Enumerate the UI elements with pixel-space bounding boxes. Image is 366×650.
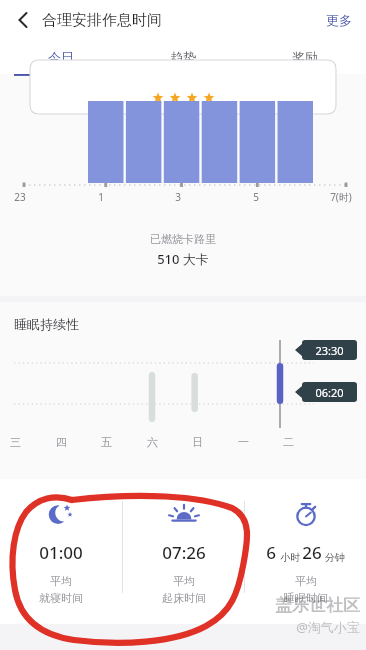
staticText: 01:00 [39, 541, 83, 564]
staticText: 6 [266, 541, 276, 564]
staticText: 奖励 [292, 49, 318, 65]
button[interactable]: 奖励 [244, 40, 366, 74]
staticText: 26 [302, 541, 322, 564]
staticText: 五 [101, 435, 112, 449]
staticText: 510 大卡 [157, 250, 209, 268]
staticText: 分钟 [322, 550, 345, 564]
button[interactable]: 趋势 [122, 40, 244, 74]
staticText: 7(时) [330, 190, 352, 204]
staticText: @淘气小宝 [296, 618, 360, 636]
staticText: 平均 [173, 574, 195, 588]
staticText: 睡眠时间 [284, 591, 328, 605]
staticText: 小时 [276, 550, 302, 564]
button[interactable]: Average bedtime [0, 479, 122, 624]
staticText: 睡眠持续性 [14, 316, 79, 332]
button[interactable]: 今日 [0, 40, 122, 74]
staticText: 今日 [48, 49, 74, 65]
button[interactable]: Average sleep duration [245, 479, 366, 624]
staticText: 二 [283, 435, 294, 449]
staticText: 平均 [50, 574, 72, 588]
staticText: 趋势 [170, 49, 196, 65]
staticText: 1 [98, 190, 104, 204]
staticText: 就寝时间 [39, 591, 83, 605]
staticText: 合理安排作息时间 [42, 11, 162, 30]
staticText: 平均 [295, 574, 317, 588]
staticText: 起床时间 [162, 591, 206, 605]
staticText: 三 [10, 435, 21, 449]
staticText: 已燃烧卡路里 [150, 232, 216, 246]
staticText: 六 [147, 435, 158, 449]
staticText: 更多 [326, 12, 352, 28]
button[interactable]: Back [6, 3, 40, 37]
staticText: 06:20 [315, 385, 344, 400]
staticText: 四 [56, 435, 67, 449]
staticText: 盖乐世社区 [275, 595, 360, 616]
staticText: 日 [192, 435, 203, 449]
button[interactable]: 更多 [312, 4, 366, 36]
staticText: 3 [175, 190, 181, 204]
staticText: 一 [238, 435, 249, 449]
staticText: 07:26 [162, 541, 206, 564]
staticText: 23:30 [315, 343, 344, 358]
staticText: 5 [253, 190, 259, 204]
button[interactable]: Average wake time [123, 479, 244, 624]
staticText: 23 [14, 190, 26, 204]
